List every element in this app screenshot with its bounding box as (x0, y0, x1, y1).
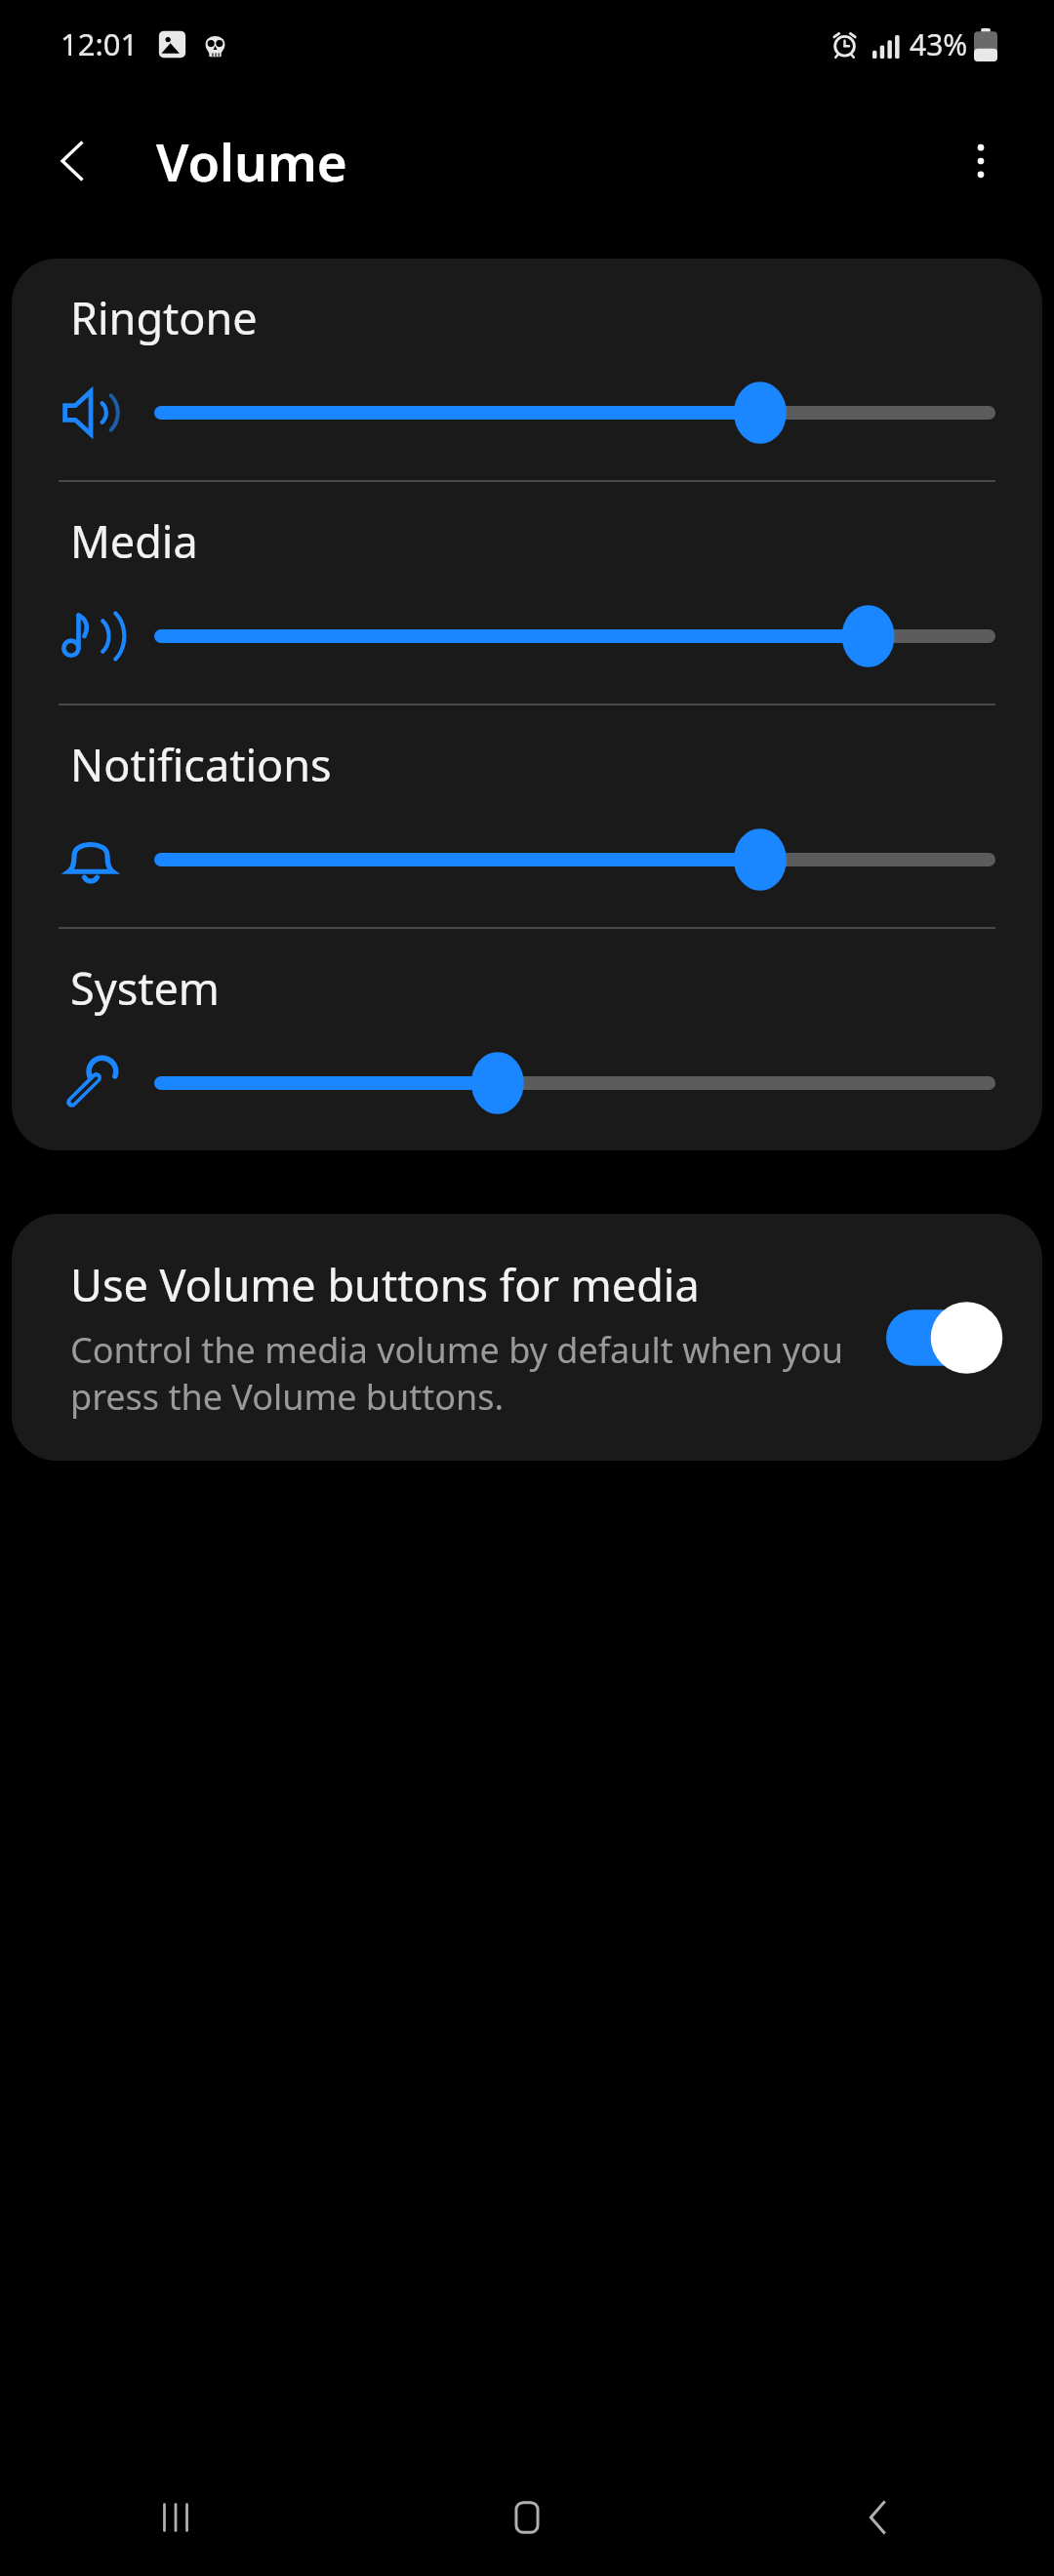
button[interactable]: Use Volume buttons for media toggle (886, 1299, 995, 1377)
button[interactable]: Notifications (12, 705, 1042, 927)
button[interactable]: Back (29, 117, 117, 205)
button[interactable]: Home (351, 2459, 703, 2576)
button[interactable]: More options (937, 117, 1025, 205)
staticText: System (70, 958, 220, 1018)
button[interactable]: Back (703, 2459, 1054, 2576)
staticText: 43% (910, 24, 968, 64)
staticText: Volume (156, 126, 347, 196)
button[interactable]: Use Volume buttons for media (12, 1214, 1042, 1461)
button[interactable]: Ringtone (12, 259, 1042, 480)
staticText: Notifications (70, 735, 332, 794)
button[interactable]: Media (12, 482, 1042, 704)
staticText: Use Volume buttons for media (70, 1255, 700, 1314)
staticText: 12:01 (61, 23, 139, 64)
staticText: Control the media volume by default when… (70, 1326, 863, 1420)
button[interactable]: Recent apps (0, 2459, 351, 2576)
staticText: Ringtone (70, 288, 258, 347)
staticText: Media (70, 511, 198, 571)
button[interactable]: System (12, 929, 1042, 1150)
